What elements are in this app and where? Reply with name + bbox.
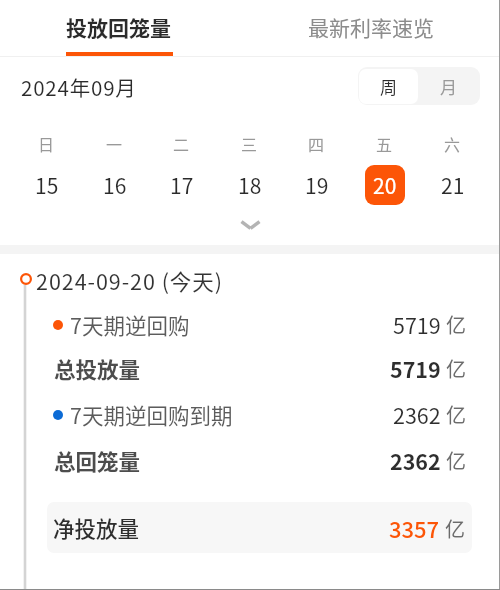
button[interactable]: 最新利率速览 (243, 0, 500, 57)
staticText: 5719 (393, 309, 441, 340)
staticText: 7天期逆回购到期 (70, 399, 233, 430)
staticText: 六 (444, 132, 461, 155)
button[interactable]: 投放回笼量 (0, 0, 243, 57)
staticText: 5719 (390, 353, 441, 384)
staticText: 15 (35, 170, 59, 200)
staticText: 20 (373, 170, 397, 200)
staticText: 总投放量 (54, 353, 141, 384)
button[interactable]: Expand calendar (225, 210, 275, 240)
staticText: 2362 (390, 445, 441, 476)
button[interactable]: 周 (359, 69, 418, 104)
staticText: 周 (380, 74, 397, 99)
button[interactable]: 7天期逆回购 (0, 302, 500, 346)
staticText: 亿 (446, 354, 466, 383)
staticText: 净投放量 (53, 512, 140, 543)
staticText: 17 (170, 170, 194, 200)
button[interactable]: 一 (81, 114, 148, 214)
staticText: 21 (441, 170, 465, 200)
button[interactable]: 月 (418, 67, 479, 105)
staticText: 二 (173, 132, 190, 155)
staticText: 3357 (389, 512, 440, 544)
staticText: 三 (241, 132, 258, 155)
button[interactable]: 7天期逆回购到期 (0, 392, 500, 436)
staticText: 月 (440, 74, 457, 99)
staticText: 亿 (445, 514, 465, 543)
button[interactable]: 三 (216, 114, 283, 214)
staticText: 7天期逆回购 (70, 309, 190, 340)
button[interactable]: 总回笼量 (0, 438, 500, 482)
button[interactable]: 总投放量 (0, 346, 500, 390)
staticText: 五 (376, 132, 393, 155)
staticText: 日 (38, 132, 55, 155)
staticText: 16 (103, 170, 127, 200)
staticText: 亿 (446, 400, 466, 429)
staticText: 亿 (446, 310, 466, 339)
staticText: 一 (106, 132, 123, 155)
staticText: 投放回笼量 (66, 12, 171, 42)
staticText: 2362 (393, 399, 441, 430)
staticText: 亿 (446, 446, 466, 475)
staticText: 2024年09月 (21, 72, 137, 102)
staticText: 总回笼量 (54, 445, 141, 476)
button[interactable]: 日 (13, 114, 80, 214)
staticText: 18 (238, 170, 262, 200)
staticText: 最新利率速览 (308, 12, 434, 42)
button[interactable]: 四 (283, 114, 350, 214)
staticText: 2024-09-20 (今天) (36, 265, 223, 296)
button[interactable]: 二 (148, 114, 215, 214)
button[interactable]: 五 (351, 114, 418, 214)
staticText: 19 (305, 170, 329, 200)
staticText: 四 (308, 132, 325, 155)
button[interactable]: 净投放量 (47, 502, 472, 553)
button[interactable]: 六 (419, 114, 486, 214)
